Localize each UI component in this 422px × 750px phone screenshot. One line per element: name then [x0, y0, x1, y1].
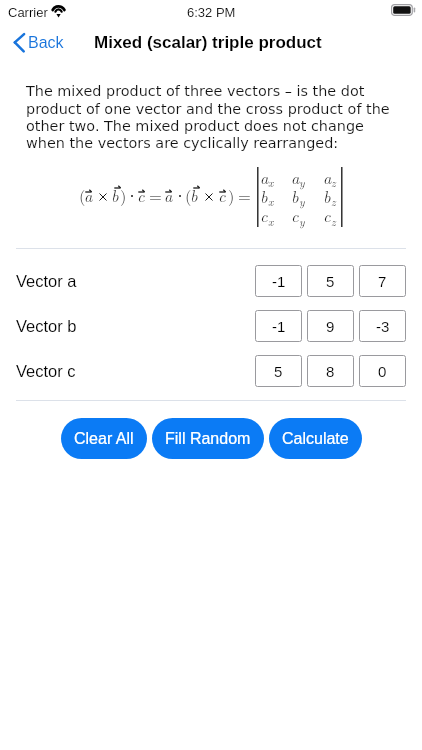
- staticText: y: [299, 213, 305, 229]
- staticText: -1: [272, 318, 286, 335]
- staticText: 5: [274, 363, 283, 380]
- button[interactable]: 5: [307, 265, 354, 297]
- staticText: 7: [378, 273, 387, 290]
- button[interactable]: Calculate: [269, 418, 362, 459]
- staticText: x: [268, 213, 274, 229]
- button[interactable]: 9: [307, 310, 354, 342]
- staticText: Back: [28, 34, 64, 52]
- staticText: z: [331, 213, 336, 229]
- button[interactable]: -1: [255, 265, 302, 297]
- staticText: z: [331, 174, 336, 190]
- staticText: (: [79, 183, 86, 206]
- staticText: =: [238, 183, 251, 206]
- staticText: -1: [272, 273, 286, 290]
- staticText: a: [291, 165, 300, 188]
- staticText: a: [323, 165, 332, 188]
- staticText: b: [291, 184, 299, 207]
- staticText: Fill Random: [165, 430, 251, 448]
- staticText: (: [185, 183, 192, 206]
- button[interactable]: Back: [4, 28, 74, 56]
- staticText: x: [268, 193, 274, 209]
- staticText: Vector b: [16, 317, 77, 335]
- staticText: 0: [378, 363, 387, 380]
- staticText: 6:32 PM: [187, 5, 236, 20]
- staticText: 5: [326, 273, 335, 290]
- staticText: c: [218, 183, 226, 206]
- staticText: a: [164, 183, 173, 206]
- staticText: Mixed (scalar) triple product: [94, 33, 322, 52]
- staticText: b: [323, 184, 331, 207]
- button[interactable]: 5: [255, 355, 302, 387]
- staticText: =: [149, 183, 162, 206]
- button[interactable]: Fill Random: [152, 418, 264, 459]
- staticText: c: [291, 203, 299, 226]
- staticText: a: [260, 165, 269, 188]
- staticText: c: [137, 183, 145, 206]
- button[interactable]: -3: [359, 310, 406, 342]
- other: Wi-Fi: [50, 3, 68, 17]
- button[interactable]: 8: [307, 355, 354, 387]
- staticText: a: [84, 183, 93, 206]
- staticText: ): [228, 183, 235, 206]
- staticText: -3: [376, 318, 390, 335]
- staticText: Clear All: [74, 430, 134, 448]
- staticText: x: [268, 174, 274, 190]
- staticText: Carrier: [8, 5, 48, 20]
- staticText: y: [299, 193, 305, 209]
- button[interactable]: -1: [255, 310, 302, 342]
- staticText: c: [260, 203, 268, 226]
- staticText: Vector a: [16, 272, 77, 290]
- staticText: y: [299, 174, 305, 190]
- staticText: 8: [326, 363, 335, 380]
- staticText: b: [260, 184, 268, 207]
- staticText: Vector c: [16, 362, 76, 380]
- staticText: b: [190, 183, 198, 206]
- staticText: Calculate: [282, 430, 349, 448]
- staticText: c: [323, 203, 331, 226]
- button[interactable]: 0: [359, 355, 406, 387]
- other: Back: [13, 31, 25, 53]
- staticText: The mixed product of three vectors – is …: [26, 83, 398, 151]
- staticText: z: [331, 193, 336, 209]
- button[interactable]: 7: [359, 265, 406, 297]
- button[interactable]: Clear All: [61, 418, 147, 459]
- staticText: ): [120, 183, 127, 206]
- staticText: 9: [326, 318, 335, 335]
- staticText: b: [111, 183, 119, 206]
